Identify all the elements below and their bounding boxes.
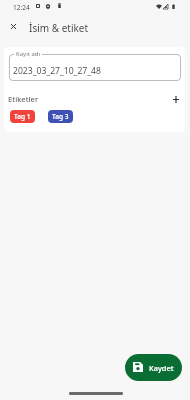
staticText: 2023_03_27_10_27_48	[13, 65, 101, 77]
staticText: Kaydet	[149, 363, 174, 373]
staticText: Etiketler	[8, 94, 39, 105]
staticText: Kayıt adı	[16, 50, 41, 58]
button[interactable]: Etiket ekle	[167, 90, 185, 108]
staticText: İsim & etiket	[29, 21, 89, 35]
button[interactable]: Tag 3	[48, 110, 73, 123]
staticText: Tag 1	[14, 112, 31, 121]
staticText: 12:24	[13, 3, 30, 12]
staticText: Tag 3	[52, 112, 69, 121]
button[interactable]: Tag 1	[10, 110, 35, 123]
button[interactable]: Kapat	[0, 15, 26, 41]
button[interactable]: Kaydet	[125, 354, 182, 381]
